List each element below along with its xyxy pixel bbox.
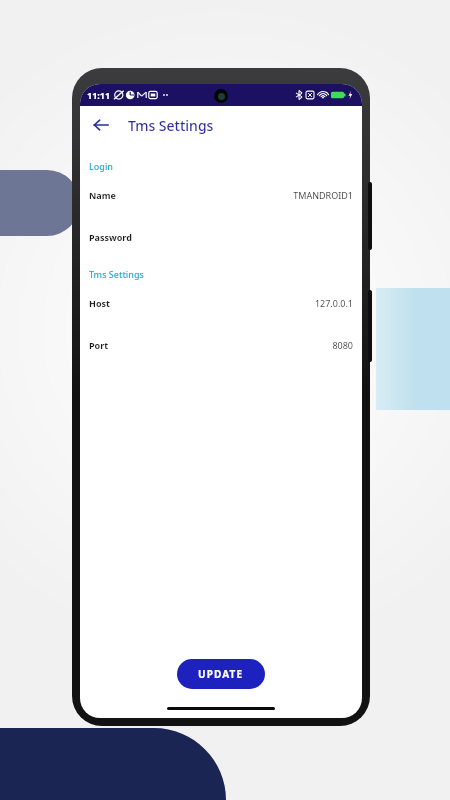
staticText: Password bbox=[89, 231, 132, 243]
staticText: 8080 bbox=[332, 339, 353, 351]
staticText: Host bbox=[89, 297, 110, 309]
button[interactable]: Host bbox=[80, 282, 362, 324]
button[interactable]: Password bbox=[80, 216, 362, 258]
staticText: UPDATE bbox=[198, 667, 244, 681]
staticText: TMANDROID1 bbox=[293, 189, 353, 201]
button[interactable]: UPDATE bbox=[177, 659, 265, 689]
button[interactable]: Back bbox=[86, 110, 116, 140]
staticText: Tms Settings bbox=[89, 268, 144, 280]
staticText: 11:11 bbox=[87, 89, 111, 101]
button[interactable]: Port bbox=[80, 324, 362, 366]
staticText: 127.0.0.1 bbox=[314, 297, 353, 309]
staticText: Port bbox=[89, 339, 109, 351]
button[interactable]: Name bbox=[80, 174, 362, 216]
staticText: Name bbox=[89, 189, 116, 201]
staticText: Login bbox=[89, 160, 113, 172]
staticText: Tms Settings bbox=[128, 116, 214, 135]
